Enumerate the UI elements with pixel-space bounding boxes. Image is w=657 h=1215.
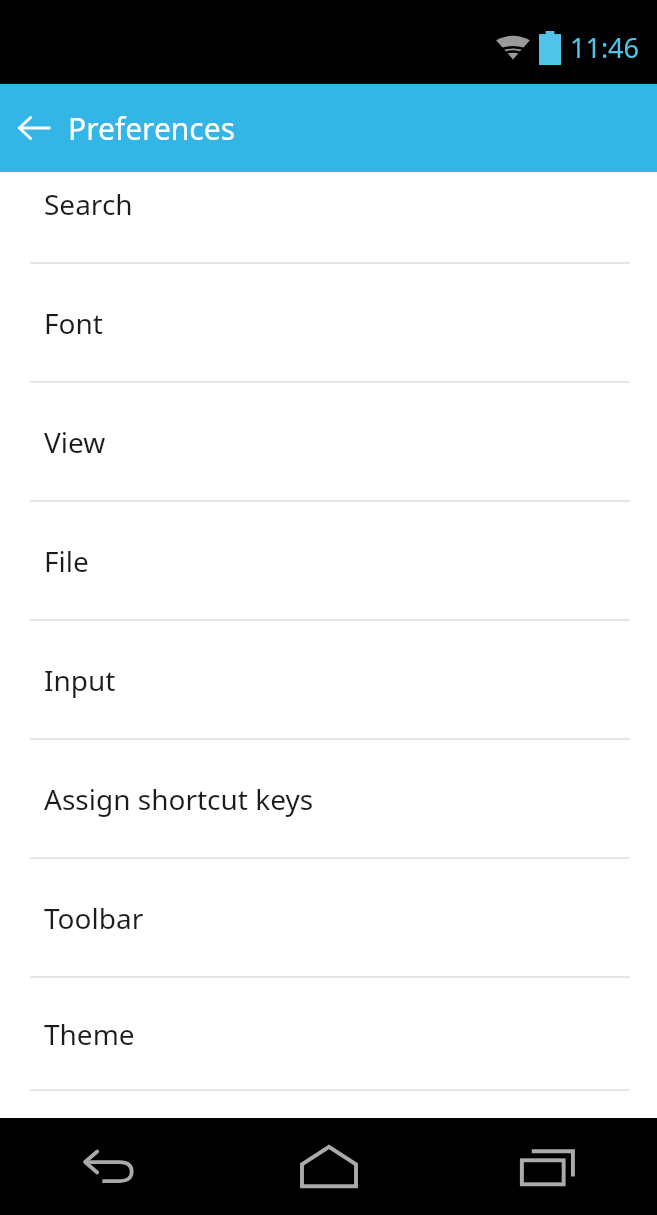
button[interactable]: Input — [0, 621, 657, 740]
staticText: Preferences — [68, 108, 236, 149]
button[interactable]: Assign shortcut keys — [0, 740, 657, 859]
staticText: Toolbar — [44, 899, 144, 937]
button[interactable]: Back — [0, 84, 68, 172]
staticText: Assign shortcut keys — [44, 780, 314, 818]
staticText: Font — [44, 304, 103, 342]
staticText: View — [44, 423, 106, 461]
button[interactable]: Search — [0, 172, 657, 264]
staticText: Theme — [44, 1015, 135, 1053]
staticText: File — [44, 542, 89, 580]
button[interactable]: Back — [0, 1118, 219, 1215]
button[interactable]: File — [0, 502, 657, 621]
button[interactable]: Theme — [0, 978, 657, 1091]
staticText: Input — [44, 661, 116, 699]
staticText: 11:46 — [570, 29, 640, 66]
button[interactable]: Font — [0, 264, 657, 383]
button[interactable]: Home — [219, 1118, 438, 1215]
button[interactable]: Toolbar — [0, 859, 657, 978]
button[interactable]: View — [0, 383, 657, 502]
button[interactable]: Recent apps — [438, 1118, 657, 1215]
staticText: Search — [44, 185, 133, 223]
